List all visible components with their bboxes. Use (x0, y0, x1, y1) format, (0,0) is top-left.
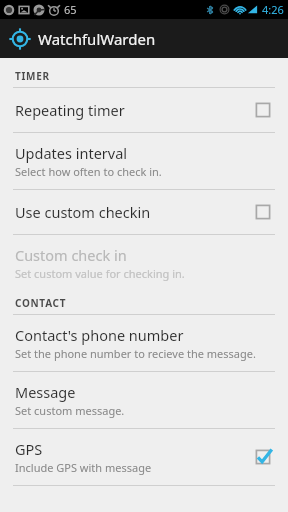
staticText: Set custom message. (15, 403, 125, 418)
staticText: 65 (64, 2, 77, 17)
button[interactable]: Unchecked (251, 200, 275, 224)
staticText: Repeating timer (15, 100, 125, 120)
button[interactable]: Updates interval (0, 133, 288, 189)
staticText: Use custom checkin (15, 202, 151, 222)
staticText: WatchfulWarden (38, 29, 156, 49)
button[interactable]: Checked (251, 445, 275, 469)
staticText: Include GPS with message (15, 460, 152, 475)
staticText: TIMER (15, 69, 50, 83)
staticText: Set custom value for checking in. (15, 266, 185, 281)
staticText: Set the phone number to recieve the mess… (15, 346, 256, 361)
button[interactable]: Repeating timer (0, 88, 288, 132)
button: Custom check in (0, 235, 288, 291)
staticText: Custom check in (15, 245, 127, 265)
staticText: Contact's phone number (15, 325, 184, 345)
staticText: Message (15, 382, 76, 402)
button[interactable]: Message (0, 372, 288, 428)
staticText: Updates interval (15, 143, 128, 163)
staticText: CONTACT (15, 296, 67, 310)
button[interactable]: Unchecked (251, 98, 275, 122)
staticText: 4:26 (262, 2, 284, 17)
button[interactable]: GPS (0, 429, 288, 485)
other: WatchfulWarden app icon (9, 28, 31, 50)
button[interactable]: Use custom checkin (0, 190, 288, 234)
staticText: Select how often to check in. (15, 164, 162, 179)
staticText: GPS (15, 439, 43, 459)
button[interactable]: Contact's phone number (0, 315, 288, 371)
